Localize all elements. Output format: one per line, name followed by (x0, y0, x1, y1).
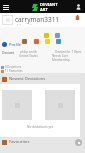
staticText: 11 Favourites (5, 69, 23, 73)
staticText: Deviant (2, 50, 15, 55)
staticText: No deviations yet (0, 125, 80, 129)
staticText: United States (19, 54, 38, 58)
staticText: Newest Deviations (9, 76, 46, 82)
button[interactable]: Badge (55, 33, 60, 38)
button[interactable]: 0 Deviations (1, 65, 22, 69)
button[interactable]: Badge (44, 33, 49, 38)
button[interactable]: Profile (2, 42, 22, 47)
button[interactable]: Badge (34, 39, 39, 44)
staticText: DEVIANT (40, 2, 58, 7)
button[interactable]: Close (75, 139, 82, 146)
button[interactable]: Avatar (2, 15, 13, 25)
staticText: Profile (9, 42, 22, 47)
button[interactable]: Badge (22, 39, 27, 44)
staticText: Deviant for 7 Years (55, 50, 82, 54)
button[interactable]: Llama badge (75, 15, 80, 20)
staticText: Favourites (9, 139, 30, 145)
staticText: philip smith (15, 24, 33, 25)
staticText: carryman3311 (15, 15, 60, 24)
button[interactable]: 11 Favourites (1, 69, 23, 73)
button[interactable]: Menu (2, 3, 10, 11)
staticText: Needs Core Membership (52, 54, 85, 62)
staticText: 0 Deviations (5, 65, 22, 69)
staticText: philip smith (20, 50, 37, 54)
button[interactable]: Badge (56, 39, 61, 44)
button[interactable]: Favourites (2, 139, 30, 145)
staticText: ART (40, 7, 48, 12)
button[interactable]: Badge (45, 39, 50, 44)
button[interactable]: DEVIANT (32, 2, 58, 12)
button[interactable]: Account (74, 3, 82, 11)
button[interactable]: Newest Deviations (0, 73, 80, 84)
